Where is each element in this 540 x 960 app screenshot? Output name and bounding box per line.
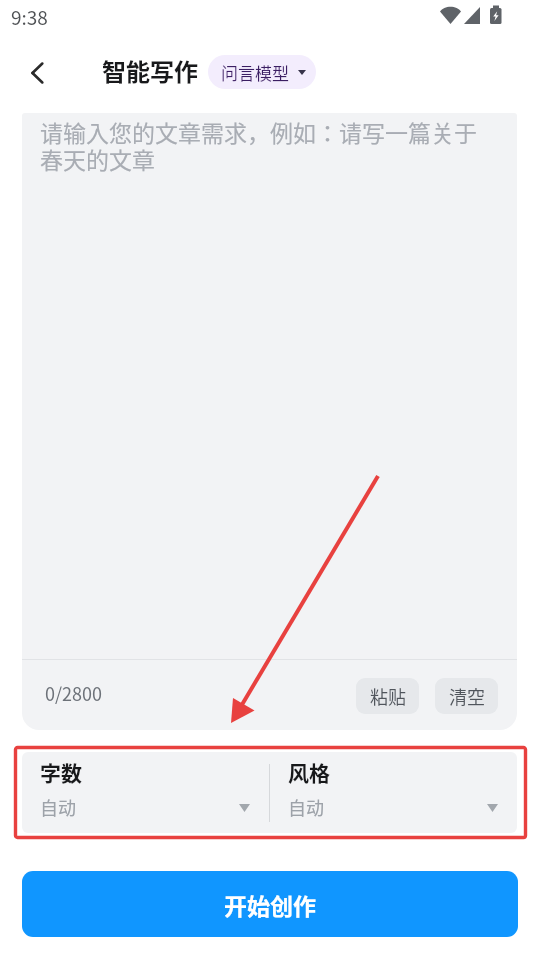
button[interactable]: Back [16,51,60,95]
staticText: 请输入您的文章需求，例如：请写一篇关于 春天的文章 [40,115,477,176]
staticText: 9:38 [11,3,48,31]
button[interactable]: 开始创作 [22,871,518,937]
staticText: 字数 [40,757,82,787]
staticText: 自动 [40,794,76,820]
staticText: 问言模型 [221,60,289,85]
staticText: 智能写作 [102,53,198,88]
button[interactable]: 字数 [22,752,269,833]
button[interactable]: 风格 [270,752,517,833]
staticText: 风格 [288,757,330,787]
button[interactable]: 清空 [435,678,498,714]
staticText: 自动 [288,794,324,820]
button[interactable]: 粘贴 [356,678,419,714]
button[interactable]: 请输入您的文章需求，例如：请写一篇关于 春天的文章 [22,113,517,659]
staticText: 开始创作 [224,888,316,921]
staticText: 清空 [449,683,485,709]
button[interactable]: 问言模型 [208,55,316,89]
staticText: 0/2800 [45,680,103,706]
staticText: 粘贴 [370,683,406,709]
